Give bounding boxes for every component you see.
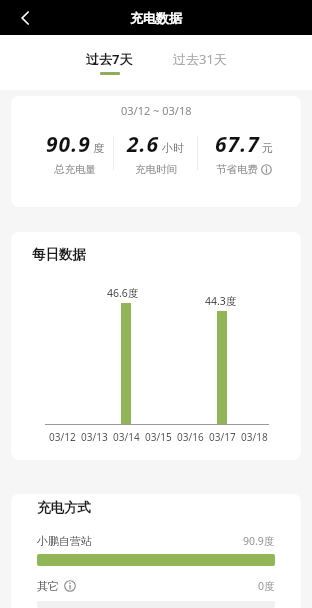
staticText: 充电方式 <box>37 499 91 516</box>
staticText: 90.9 <box>46 130 91 159</box>
staticText: 每日数据 <box>32 246 86 263</box>
button[interactable]: 2.6 <box>114 130 197 176</box>
staticText: 小鹏自营站 <box>37 534 92 548</box>
staticText: 小时 <box>162 141 184 155</box>
button[interactable]: 过去31天 <box>173 50 227 75</box>
button[interactable]: 小鹏自营站 <box>37 534 275 548</box>
button[interactable] <box>12 4 40 32</box>
staticText: 03/17 <box>209 430 236 444</box>
staticText: 03/14 <box>113 430 140 444</box>
staticText: 67.7 <box>215 130 260 159</box>
staticText: 03/16 <box>177 430 204 444</box>
staticText: 03/15 <box>145 430 172 444</box>
staticText: 过去31天 <box>173 50 227 68</box>
staticText: 度 <box>93 141 104 155</box>
staticText: 03/12 ~ 03/18 <box>121 103 192 118</box>
staticText: 0度 <box>258 579 275 593</box>
staticText: 46.6度 <box>107 286 139 300</box>
button[interactable]: 67.7 <box>202 130 285 176</box>
staticText: 90.9度 <box>243 534 275 548</box>
staticText: 过去7天 <box>86 50 133 68</box>
button[interactable]: 过去7天 <box>86 50 133 75</box>
staticText: 总充电量 <box>54 163 96 176</box>
button[interactable]: 90.9 <box>34 130 116 176</box>
staticText: 充电数据 <box>130 10 182 26</box>
staticText: 充电时间 <box>135 163 177 176</box>
staticText: 44.3度 <box>205 294 237 308</box>
staticText: 其它 <box>37 579 59 593</box>
staticText: 2.6 <box>127 130 160 159</box>
staticText: 03/18 <box>241 430 268 444</box>
staticText: 03/12 <box>49 430 76 444</box>
staticText: 节省电费 <box>216 163 258 176</box>
button[interactable]: 其它 <box>37 579 275 593</box>
staticText: 元 <box>262 141 273 155</box>
staticText: 03/13 <box>81 430 108 444</box>
